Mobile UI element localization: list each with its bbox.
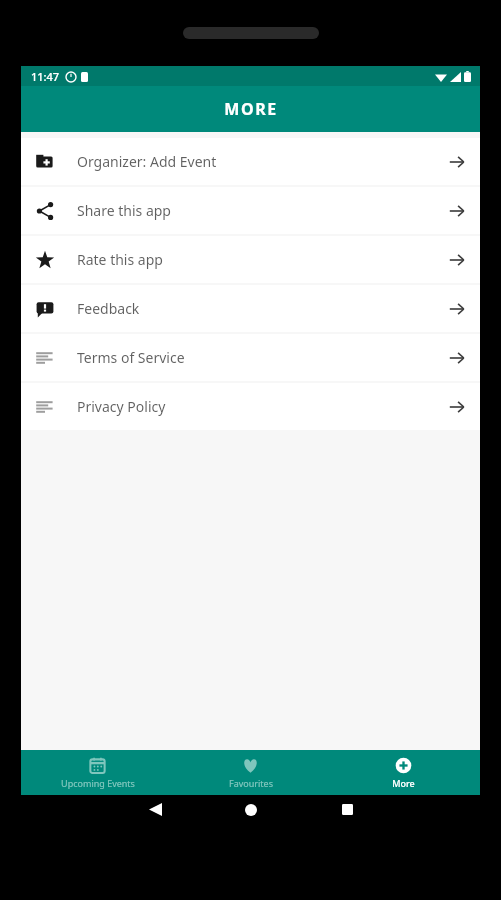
staticText: Favourites <box>229 777 273 789</box>
staticText: Share this app <box>77 201 171 220</box>
staticText: MORE <box>224 98 278 120</box>
staticText: Rate this app <box>77 250 163 269</box>
staticText: Privacy Policy <box>77 397 166 416</box>
button[interactable]: Back <box>107 803 203 816</box>
staticText: 11:47 <box>31 69 60 84</box>
staticText: Organizer: Add Event <box>77 152 217 171</box>
button[interactable]: Recent apps <box>299 804 395 815</box>
button[interactable]: Upcoming Events <box>21 750 174 795</box>
staticText: Upcoming Events <box>61 777 135 789</box>
staticText: Terms of Service <box>77 348 185 367</box>
staticText: More <box>392 777 415 789</box>
button[interactable]: Organizer: Add Event <box>21 138 480 185</box>
staticText: Feedback <box>77 299 140 318</box>
button[interactable]: Terms of Service <box>21 334 480 381</box>
button[interactable]: Favourites <box>174 750 327 795</box>
button[interactable]: More <box>327 750 480 795</box>
button[interactable]: Feedback <box>21 285 480 332</box>
button[interactable]: Rate this app <box>21 236 480 283</box>
button[interactable]: Home <box>203 804 299 816</box>
button[interactable]: Share this app <box>21 187 480 234</box>
button[interactable]: Privacy Policy <box>21 383 480 430</box>
